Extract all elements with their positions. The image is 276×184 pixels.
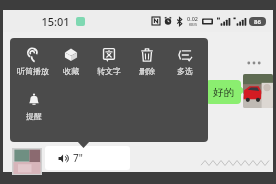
staticText: 好的 <box>213 86 234 99</box>
staticText: 删除 <box>139 66 155 76</box>
button[interactable]: 提醒 <box>15 91 53 122</box>
staticText: 提醒 <box>26 111 42 121</box>
button[interactable]: 转文字 <box>90 46 128 77</box>
staticText: KB/S <box>189 22 197 27</box>
button[interactable]: 听筒播放 <box>14 46 52 77</box>
staticText: 86 <box>254 18 261 26</box>
staticText: 0.02 <box>187 15 198 22</box>
button[interactable]: 删除 <box>128 46 166 77</box>
staticText: 听筒播放 <box>17 66 49 76</box>
staticText: 7" <box>73 151 83 165</box>
staticText: 收藏 <box>63 66 79 76</box>
button[interactable]: 好的 <box>206 80 241 104</box>
button[interactable]: More options <box>243 54 265 72</box>
button[interactable]: 收藏 <box>52 46 90 77</box>
button[interactable]: Photo <box>243 74 273 108</box>
button[interactable]: Avatar <box>12 148 42 175</box>
staticText: 15:01 <box>41 14 70 29</box>
button[interactable]: 多选 <box>166 46 204 77</box>
staticText: 转文字 <box>97 66 121 76</box>
staticText: 多选 <box>177 66 193 76</box>
button[interactable]: 7" <box>45 146 130 170</box>
